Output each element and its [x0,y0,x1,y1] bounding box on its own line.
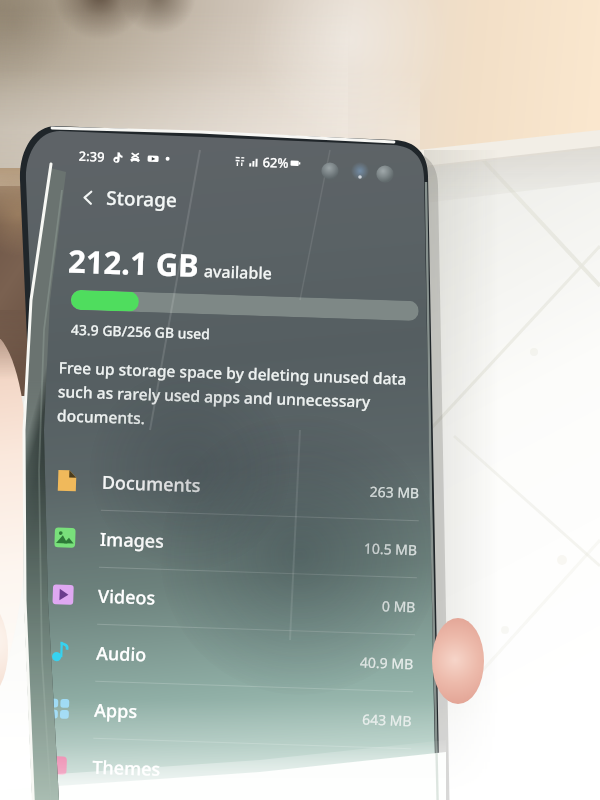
button[interactable]: Apps [47,680,413,748]
staticText: Themes [92,755,161,782]
staticText: 43.9 GB/256 GB used [71,320,211,343]
staticText: Storage [106,185,178,213]
staticText: Images [100,527,164,554]
button[interactable]: Documents [55,452,421,520]
staticText: Audio [96,641,148,667]
button[interactable]: Back [72,182,103,213]
staticText: Videos [98,584,156,611]
button[interactable]: Images [53,509,419,577]
staticText: 40.9 MB [360,652,414,673]
staticText: 0 MB [382,596,416,616]
button[interactable]: Videos [51,566,417,634]
staticText: 62% [262,153,289,172]
button[interactable]: Audio [49,623,415,691]
staticText: Documents [101,470,201,498]
button[interactable]: Themes [45,737,411,800]
staticText: Apps [94,698,138,724]
staticText: 10.5 MB [363,538,418,559]
staticText: 263 MB [369,482,420,502]
staticText: 2:39 [78,147,105,166]
staticText: available [203,260,272,284]
staticText: Free up storage space by deleting unused… [57,356,417,437]
staticText: 212.1 GB [67,240,200,286]
staticText: 643 MB [362,710,412,730]
